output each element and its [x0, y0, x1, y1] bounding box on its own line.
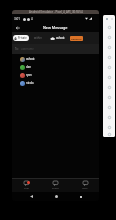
- button[interactable]: Home: [103, 102, 115, 112]
- staticText: New Message: [43, 25, 68, 30]
- staticText: username: [21, 47, 34, 51]
- staticText: ashoat: [56, 36, 65, 40]
- button[interactable]: Zoom: [103, 82, 115, 92]
- staticText: ryan: [26, 73, 32, 77]
- button[interactable]: Take screenshot: [103, 72, 115, 82]
- staticText: Private: [18, 36, 27, 40]
- button[interactable]: Back: [26, 192, 36, 201]
- staticText: GENERAL: [71, 37, 82, 40]
- button[interactable]: More: [70, 178, 99, 192]
- button[interactable]: dan: [12, 63, 99, 71]
- button[interactable]: Fold: [103, 122, 115, 132]
- button[interactable]: Power: [103, 22, 115, 32]
- button[interactable]: Back: [103, 92, 115, 102]
- staticText: Chat: [24, 187, 29, 190]
- button[interactable]: GENERAL: [70, 36, 83, 41]
- button[interactable]: More: [103, 132, 115, 137]
- button[interactable]: Collapse: [105, 17, 108, 20]
- button[interactable]: Private: [13, 35, 29, 41]
- button[interactable]: nicola: [12, 79, 99, 87]
- button[interactable]: Volume down: [103, 42, 115, 52]
- button[interactable]: Volume up: [103, 32, 115, 42]
- staticText: ashoat: [26, 57, 35, 61]
- button[interactable]: Recents: [76, 192, 86, 201]
- button[interactable]: Profile: [41, 178, 70, 192]
- button[interactable]: ashoat: [12, 55, 99, 63]
- staticText: within: [34, 36, 42, 40]
- staticText: nicola: [26, 81, 34, 85]
- button[interactable]: Rotate right: [103, 62, 115, 72]
- staticText: dan: [26, 65, 31, 69]
- staticText: More: [82, 187, 88, 190]
- button[interactable]: Back: [12, 23, 23, 32]
- staticText: 4: [31, 17, 33, 21]
- button[interactable]: Overview: [103, 112, 115, 122]
- button[interactable]: Close: [110, 17, 113, 20]
- button[interactable]: Rotate left: [103, 52, 115, 62]
- staticText: Android Emulator - Pixel_4_API_30:5554: [29, 10, 83, 14]
- button[interactable]: Chat: [12, 178, 41, 192]
- button[interactable]: ryan: [12, 71, 99, 79]
- staticText: Profile: [52, 187, 59, 190]
- staticText: 3:01: [14, 17, 21, 21]
- staticText: To:: [15, 47, 19, 51]
- button[interactable]: Home: [51, 192, 61, 201]
